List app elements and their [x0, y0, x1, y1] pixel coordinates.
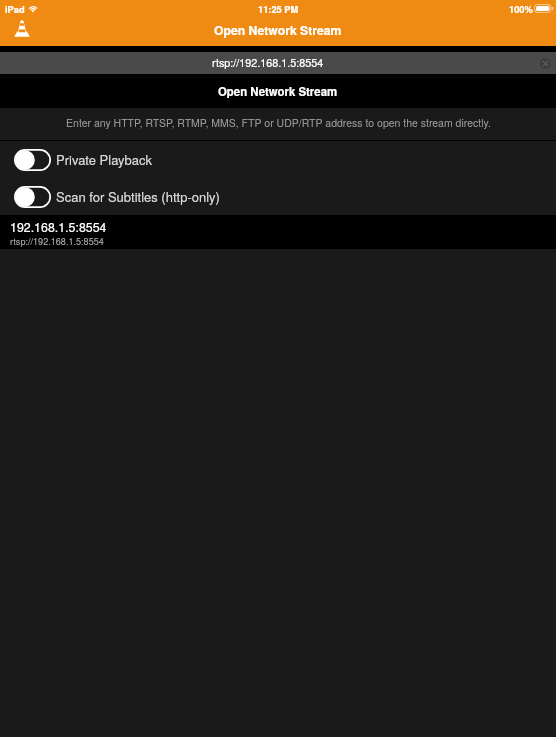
staticText: 192.168.1.5:8554 [10, 218, 107, 236]
button[interactable]: rtsp://192.168.1.5:8554 [0, 52, 556, 74]
staticText: Open Network Stream [214, 21, 342, 38]
staticText: 100% [509, 3, 533, 14]
button[interactable]: Scan for Subtitles (http-only) [0, 178, 556, 215]
staticText: rtsp://192.168.1.5:8554 [10, 235, 104, 248]
staticText: Enter any HTTP, RTSP, RTMP, MMS, FTP or … [66, 115, 491, 130]
staticText: Private Playback [56, 150, 153, 169]
staticText: 11:25 PM [258, 3, 299, 16]
button[interactable]: VLC [14, 20, 30, 37]
staticText: Open Network Stream [218, 83, 338, 99]
staticText: iPad [5, 3, 25, 14]
button[interactable]: 192.168.1.5:8554 [0, 215, 556, 249]
button[interactable]: Private Playback [0, 141, 556, 178]
button[interactable]: Clear text [540, 58, 551, 69]
staticText: rtsp://192.168.1.5:8554 [212, 55, 324, 70]
staticText: Scan for Subtitles (http-only) [56, 187, 220, 206]
